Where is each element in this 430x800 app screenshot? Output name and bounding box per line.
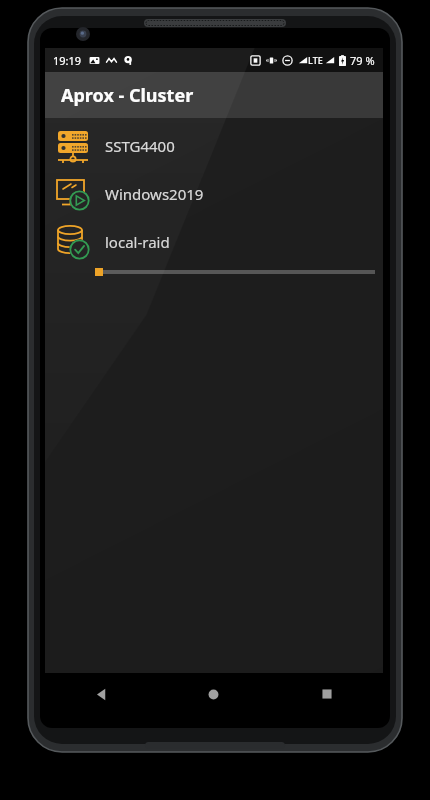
button[interactable]: local-raid xyxy=(45,218,383,266)
staticText: 79 % xyxy=(350,53,375,68)
staticText: local-raid xyxy=(105,232,170,252)
staticText: LTE xyxy=(308,54,323,66)
button[interactable]: Progress xyxy=(45,266,383,278)
staticText: SSTG4400 xyxy=(105,136,175,156)
button[interactable]: Recent apps xyxy=(270,673,383,715)
button[interactable]: Windows2019 xyxy=(45,170,383,218)
staticText: Aprox - Cluster xyxy=(61,83,194,108)
button[interactable]: SSTG4400 xyxy=(45,122,383,170)
staticText: Windows2019 xyxy=(105,184,204,204)
button[interactable]: Back xyxy=(45,673,157,715)
button[interactable]: Aprox - Cluster xyxy=(45,72,383,118)
staticText: 19:19 xyxy=(53,53,82,68)
button[interactable]: Home xyxy=(157,673,270,715)
